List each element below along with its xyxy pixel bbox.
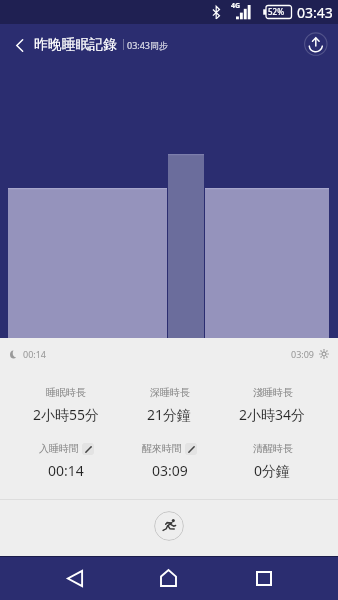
button[interactable]: Share xyxy=(302,30,332,60)
button[interactable]: Edit 醒來時間 xyxy=(185,443,197,455)
staticText: 0分鐘 xyxy=(254,461,291,480)
staticText: 52% xyxy=(268,6,284,17)
staticText: 淺睡時長 xyxy=(253,386,293,399)
staticText: 03:43 xyxy=(297,3,333,22)
staticText: 03:43同步 xyxy=(127,39,169,51)
staticText: 醒來時間 xyxy=(142,442,182,455)
button[interactable]: Edit 入睡時間 xyxy=(82,443,94,455)
staticText: 2小時55分 xyxy=(33,405,100,424)
staticText: 入睡時間 xyxy=(39,442,79,455)
staticText: 睡眠時長 xyxy=(46,386,86,399)
staticText: 00:14 xyxy=(23,348,47,360)
staticText: 深睡時長 xyxy=(150,386,190,399)
staticText: 00:14 xyxy=(48,461,84,480)
staticText: 4G xyxy=(231,1,241,11)
button[interactable]: Activity xyxy=(154,511,184,541)
button[interactable]: Back xyxy=(55,558,95,598)
staticText: 2小時34分 xyxy=(239,405,306,424)
button[interactable]: Home xyxy=(148,558,188,598)
staticText: 21分鐘 xyxy=(147,405,192,424)
button[interactable]: Back xyxy=(6,32,32,58)
button[interactable]: Recent apps xyxy=(244,558,284,598)
staticText: 清醒時長 xyxy=(253,442,293,455)
staticText: 03:09 xyxy=(291,348,315,360)
staticText: 03:09 xyxy=(152,461,188,480)
staticText: 昨晚睡眠記錄 xyxy=(34,36,117,53)
